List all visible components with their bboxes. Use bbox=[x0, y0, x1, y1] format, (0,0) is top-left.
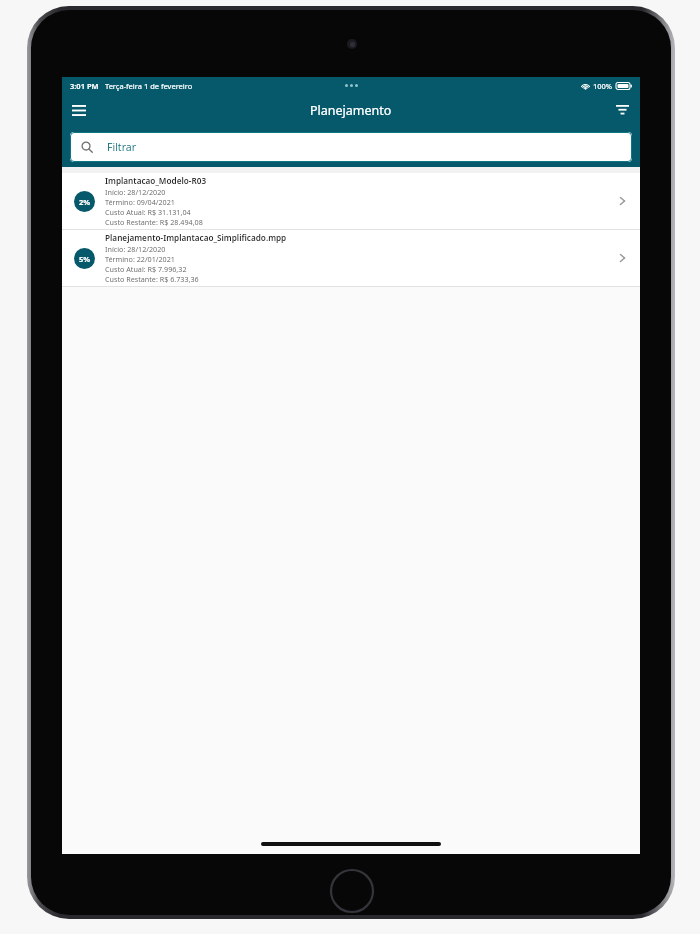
staticText: 3:01 PM bbox=[70, 81, 99, 91]
staticText: Implantacao_Modelo-R03 bbox=[105, 175, 207, 186]
staticText: Início: 28/12/2020 bbox=[105, 187, 166, 197]
staticText: 100% bbox=[593, 81, 613, 91]
button[interactable]: 2% bbox=[62, 173, 640, 229]
other: Home bbox=[329, 868, 375, 914]
staticText: Início: 28/12/2020 bbox=[105, 244, 166, 254]
staticText: Custo Atual: R$ 31.131,04 bbox=[105, 207, 191, 217]
staticText: Planejamento bbox=[310, 102, 392, 119]
staticText: Terça-feira 1 de fevereiro bbox=[105, 81, 193, 91]
staticText: 2% bbox=[79, 197, 91, 207]
button[interactable]: Filter bbox=[608, 96, 636, 124]
staticText: Término: 09/04/2021 bbox=[105, 197, 175, 207]
staticText: Custo Restante: R$ 6.733,36 bbox=[105, 274, 199, 284]
staticText: Filtrar bbox=[107, 140, 137, 154]
other: Open bbox=[614, 193, 630, 209]
button[interactable]: Filtrar bbox=[70, 132, 632, 162]
staticText: Custo Restante: R$ 28.494,08 bbox=[105, 217, 203, 227]
button[interactable]: 5% bbox=[62, 230, 640, 286]
staticText: Término: 22/01/2021 bbox=[105, 254, 175, 264]
staticText: Custo Atual: R$ 7.996,32 bbox=[105, 264, 187, 274]
other: Open bbox=[614, 250, 630, 266]
button[interactable]: Menu bbox=[65, 96, 93, 124]
staticText: Planejamento-Implantacao_Simplificado.mp… bbox=[105, 232, 287, 243]
staticText: 5% bbox=[79, 254, 91, 264]
